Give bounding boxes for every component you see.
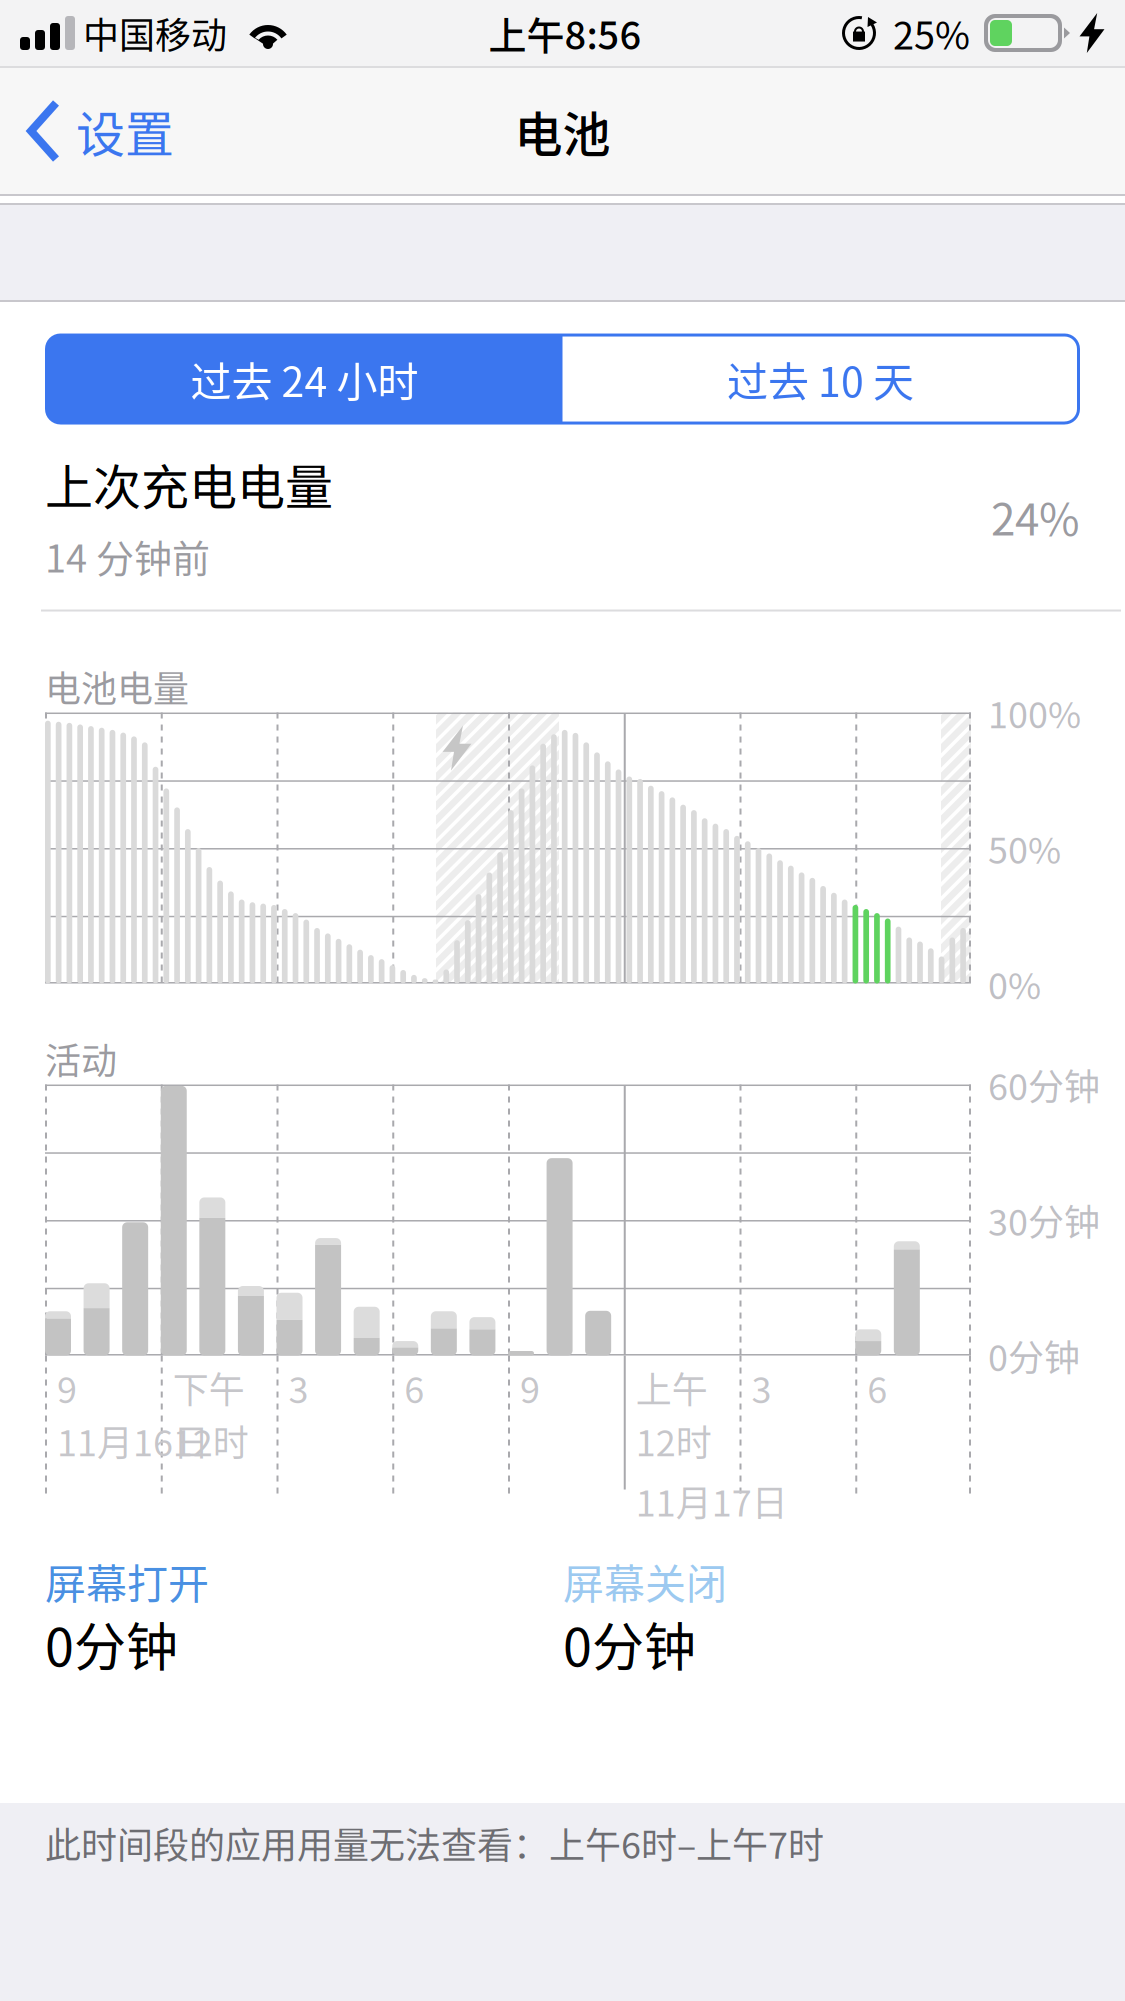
staticText: 此时间段的应用用量无法查看：上午6时–上午7时	[45, 1817, 824, 1869]
staticText: 50%	[988, 822, 1061, 874]
staticText: 12时	[173, 1414, 249, 1467]
staticText: 过去 10 天	[727, 349, 914, 409]
staticText: 11月17日	[636, 1475, 788, 1527]
staticText: 上次充电电量	[45, 449, 333, 518]
staticText: 上午	[636, 1361, 708, 1414]
staticText: 0分钟	[563, 1606, 696, 1681]
button[interactable]: 过去 24 小时	[46, 335, 562, 423]
staticText: 中国移动	[83, 7, 227, 59]
staticText: 下午	[173, 1361, 245, 1414]
staticText: 9	[520, 1361, 540, 1414]
staticText: 6	[867, 1361, 887, 1414]
staticText: 100%	[988, 687, 1081, 739]
staticText: 3	[751, 1361, 771, 1414]
staticText: 设置	[76, 95, 174, 166]
staticText: 屏幕打开	[45, 1551, 209, 1611]
staticText: 9	[57, 1361, 77, 1414]
staticText: 电池电量	[45, 660, 189, 712]
staticText: 活动	[45, 1032, 117, 1084]
staticText: 24%	[991, 484, 1080, 548]
staticText: 屏幕关闭	[563, 1551, 727, 1611]
staticText: 3	[288, 1361, 308, 1414]
staticText: 电池	[514, 96, 610, 166]
staticText: 0分钟	[45, 1606, 178, 1681]
staticText: 14 分钟前	[45, 528, 210, 583]
staticText: 12时	[636, 1414, 712, 1467]
staticText: 0%	[988, 958, 1041, 1010]
staticText: 60分钟	[988, 1059, 1100, 1111]
button[interactable]: 设置	[0, 68, 192, 194]
staticText: 30分钟	[988, 1194, 1100, 1246]
staticText: 6	[404, 1361, 424, 1414]
staticText: 过去 24 小时	[190, 349, 418, 409]
button[interactable]: 过去 10 天	[562, 335, 1078, 423]
staticText: 25%	[893, 5, 970, 60]
staticText: 0分钟	[988, 1330, 1080, 1382]
staticText: 上午8:56	[488, 5, 641, 60]
staticText: 11月16日	[57, 1414, 209, 1467]
